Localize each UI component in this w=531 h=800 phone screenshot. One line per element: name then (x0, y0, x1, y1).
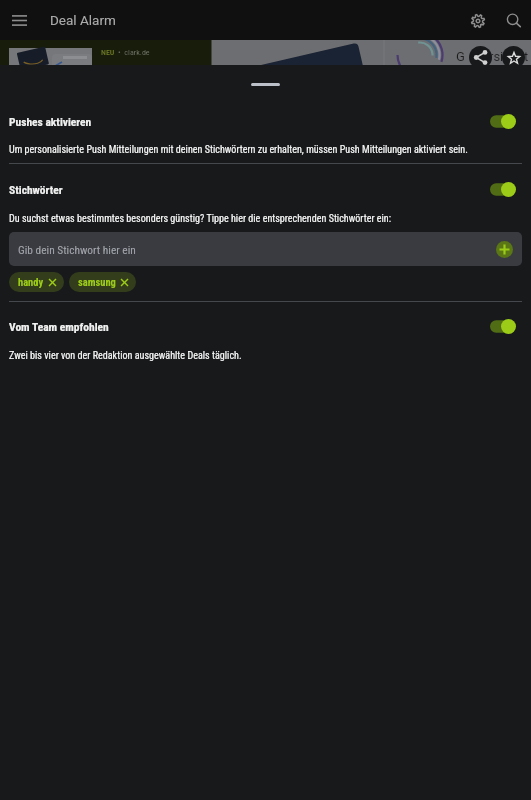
staticText: Du suchst etwas bestimmtes besonders gün… (9, 213, 392, 225)
staticText: G (456, 49, 465, 64)
button[interactable]: Settings (466, 9, 489, 32)
staticText: rsi (489, 49, 504, 64)
button[interactable]: Add to favourites (502, 46, 525, 69)
button[interactable]: Stichwörter (0, 180, 531, 198)
button[interactable]: samsung (69, 272, 136, 292)
staticText: t (524, 49, 529, 64)
button[interactable]: Open navigation menu (8, 9, 31, 32)
staticText: Vom Team empfohlen (9, 320, 109, 333)
button[interactable]: Toggle keywords (490, 182, 516, 197)
button[interactable]: Toggle push notifications (490, 114, 516, 129)
staticText: Pushes aktivieren (9, 115, 92, 128)
button[interactable]: Deal card (0, 40, 531, 65)
button[interactable]: Share (469, 46, 492, 69)
staticText: Gib dein Stichwort hier ein (18, 243, 136, 256)
staticText: samsung (78, 276, 116, 288)
staticText: NEU (101, 48, 115, 57)
staticText: handy (18, 276, 44, 288)
button[interactable]: Gib dein Stichwort hier ein (9, 232, 522, 266)
staticText: • clark.de (118, 48, 150, 57)
button[interactable]: Pushes aktivieren (0, 112, 531, 130)
staticText: Um personalisierte Push Mitteilungen mit… (9, 144, 468, 156)
staticText: Stichwörter (9, 183, 63, 196)
button[interactable]: Add keyword (496, 241, 513, 258)
staticText: Zwei bis vier von der Redaktion ausgewäh… (9, 350, 242, 362)
button[interactable]: Search (502, 9, 525, 32)
button[interactable]: handy (9, 272, 64, 292)
staticText: Deal Alarm (50, 12, 116, 28)
button[interactable]: Vom Team empfohlen (0, 317, 531, 335)
button[interactable]: Toggle editorial picks (490, 319, 516, 334)
